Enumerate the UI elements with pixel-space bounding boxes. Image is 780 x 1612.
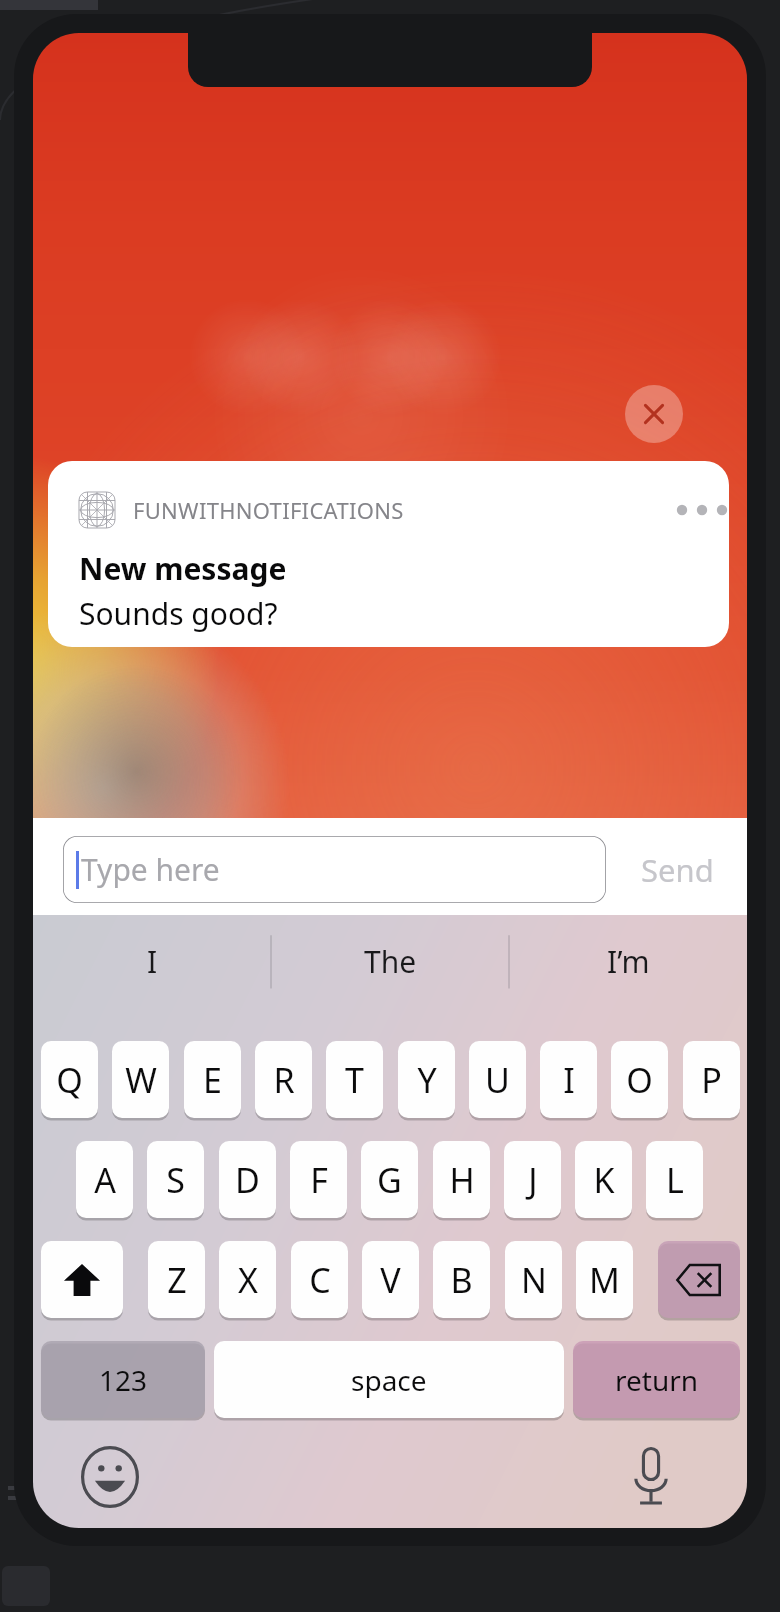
staticText: 123 (99, 1361, 148, 1399)
button[interactable]: Numbers (41, 1341, 205, 1418)
button[interactable]: The (271, 915, 509, 1007)
staticText: V (380, 1257, 401, 1303)
button[interactable]: E (184, 1041, 241, 1118)
staticText: I (147, 941, 158, 982)
button[interactable]: J (504, 1141, 561, 1218)
staticText: U (485, 1057, 510, 1103)
staticText: I (563, 1057, 575, 1103)
button[interactable]: M (576, 1241, 633, 1318)
button[interactable]: Q (41, 1041, 98, 1118)
button[interactable]: Y (398, 1041, 455, 1118)
staticText: N (521, 1257, 547, 1303)
button[interactable]: N (505, 1241, 562, 1318)
button[interactable]: More options (675, 493, 729, 527)
staticText: return (615, 1361, 699, 1399)
staticText: B (450, 1257, 473, 1303)
button[interactable]: H (433, 1141, 490, 1218)
staticText: The (364, 941, 417, 982)
button[interactable]: U (469, 1041, 526, 1118)
staticText: C (309, 1257, 331, 1303)
button[interactable]: Return (573, 1341, 740, 1418)
button[interactable]: Type here (63, 836, 606, 903)
staticText: H (449, 1157, 475, 1203)
button[interactable]: D (219, 1141, 276, 1218)
button[interactable]: T (326, 1041, 383, 1118)
button[interactable]: I (33, 915, 271, 1007)
button[interactable]: A (76, 1141, 133, 1218)
button[interactable]: Space (214, 1341, 564, 1418)
staticText: space (351, 1361, 427, 1399)
staticText: X (238, 1257, 258, 1303)
staticText: A (94, 1157, 116, 1203)
staticText: FUNWITHNOTIFICATIONS (133, 495, 404, 525)
staticText: R (273, 1057, 295, 1103)
staticText: P (701, 1057, 722, 1103)
button[interactable]: V (362, 1241, 419, 1318)
button[interactable]: Shift (41, 1241, 123, 1318)
button[interactable]: K (575, 1141, 632, 1218)
button[interactable]: F (290, 1141, 347, 1218)
staticText: O (626, 1057, 653, 1103)
button[interactable]: Dictation (617, 1443, 685, 1511)
button[interactable]: G (361, 1141, 418, 1218)
staticText: S (166, 1157, 185, 1203)
button[interactable]: O (611, 1041, 668, 1118)
button[interactable]: FUNWITHNOTIFICATIONS (48, 461, 729, 647)
staticText: G (377, 1157, 402, 1203)
button[interactable]: B (433, 1241, 490, 1318)
staticText: W (125, 1057, 157, 1103)
button[interactable]: R (255, 1041, 312, 1118)
staticText: New message (79, 548, 287, 589)
button[interactable]: Emoji keyboard (76, 1443, 144, 1511)
staticText: Y (417, 1057, 437, 1103)
staticText: F (310, 1157, 328, 1203)
staticText: Send (641, 849, 714, 891)
button[interactable]: S (147, 1141, 204, 1218)
staticText: Type here (81, 849, 220, 890)
staticText: L (666, 1157, 684, 1203)
button[interactable]: Z (148, 1241, 205, 1318)
staticText: Q (56, 1057, 83, 1103)
staticText: M (589, 1257, 620, 1303)
button[interactable]: Send (622, 836, 732, 903)
staticText: T (345, 1057, 364, 1103)
button[interactable]: W (112, 1041, 169, 1118)
button[interactable]: X (219, 1241, 276, 1318)
button[interactable]: L (646, 1141, 703, 1218)
button[interactable]: C (291, 1241, 348, 1318)
button[interactable]: I’m (509, 915, 747, 1007)
staticText: Sounds good? (79, 593, 278, 634)
staticText: J (528, 1157, 538, 1203)
staticText: Z (167, 1257, 187, 1303)
button[interactable]: Backspace (658, 1241, 740, 1318)
button[interactable]: Close notification (625, 385, 683, 443)
staticText: D (235, 1157, 260, 1203)
button[interactable]: I (540, 1041, 597, 1118)
button[interactable]: P (683, 1041, 740, 1118)
staticText: I’m (607, 941, 650, 982)
staticText: K (593, 1157, 615, 1203)
staticText: E (203, 1057, 222, 1103)
